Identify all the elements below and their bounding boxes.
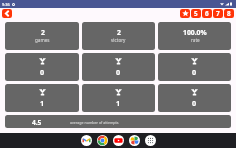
button[interactable]: 7 [213,9,223,18]
button[interactable]: 0 [158,84,231,112]
staticText: 1 [40,98,45,108]
staticText: 7 [216,9,220,18]
staticText: games [35,37,50,43]
staticText: 0 [192,98,197,108]
button[interactable]: YouTube [113,135,124,146]
staticText: 8 [227,9,231,18]
button[interactable]: Chrome [97,135,108,146]
staticText: 0 [192,67,197,77]
button[interactable]: 5 [191,9,201,18]
button[interactable]: 6 [202,9,212,18]
button[interactable]: All apps [145,135,156,146]
staticText: 100.0% [183,28,207,37]
button[interactable]: Photos [129,135,140,146]
button[interactable]: 0 [158,53,231,81]
staticText: 6 [205,9,209,18]
staticText: victory [111,37,126,43]
staticText: rate [191,37,200,43]
button[interactable]: Back [2,9,12,18]
button[interactable]: 100.0% [158,22,231,50]
button[interactable]: 1 [5,84,79,112]
button[interactable]: 2 [5,22,79,50]
button[interactable]: 2 [82,22,155,50]
staticText: 0 [40,67,45,77]
button[interactable]: 8 [224,9,234,18]
button[interactable]: 1 [82,84,155,112]
staticText: 2 [41,28,45,37]
button[interactable]: Gmail [81,135,92,146]
button[interactable]: 4.5 [5,115,231,128]
staticText: 2 [117,28,121,37]
staticText: 5 [194,9,198,18]
staticText: 9:36 [2,2,10,7]
button[interactable]: Favorite [180,9,190,18]
staticText: 0 [116,67,121,77]
button[interactable]: 0 [82,53,155,81]
button[interactable]: 0 [5,53,79,81]
staticText: 4.5 [32,118,42,127]
staticText: 1 [116,98,121,108]
staticText: average number of attempts [70,120,119,125]
